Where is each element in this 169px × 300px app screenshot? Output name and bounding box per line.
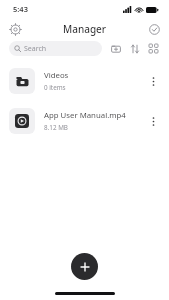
button[interactable]: Select bbox=[146, 21, 162, 37]
staticText: App User Manual.mp4 bbox=[44, 110, 126, 121]
button[interactable]: App User Manual.mp4 bbox=[0, 101, 169, 141]
button[interactable]: Grid view bbox=[147, 42, 160, 55]
staticText: Search bbox=[24, 44, 47, 54]
button[interactable]: New folder bbox=[109, 42, 122, 55]
button[interactable]: Settings bbox=[7, 21, 23, 37]
staticText: 5:43 bbox=[13, 4, 28, 14]
button[interactable]: Videos bbox=[0, 61, 169, 101]
staticText: 0 items bbox=[44, 83, 66, 92]
staticText: 8.12 MB bbox=[44, 123, 68, 132]
button[interactable]: More options bbox=[146, 74, 160, 88]
button[interactable]: Add bbox=[71, 253, 98, 280]
staticText: Manager bbox=[63, 22, 107, 36]
button[interactable]: More options bbox=[146, 114, 160, 128]
button[interactable]: Search bbox=[9, 41, 102, 56]
staticText: Videos bbox=[44, 70, 69, 81]
button[interactable]: Sort bbox=[128, 42, 141, 55]
